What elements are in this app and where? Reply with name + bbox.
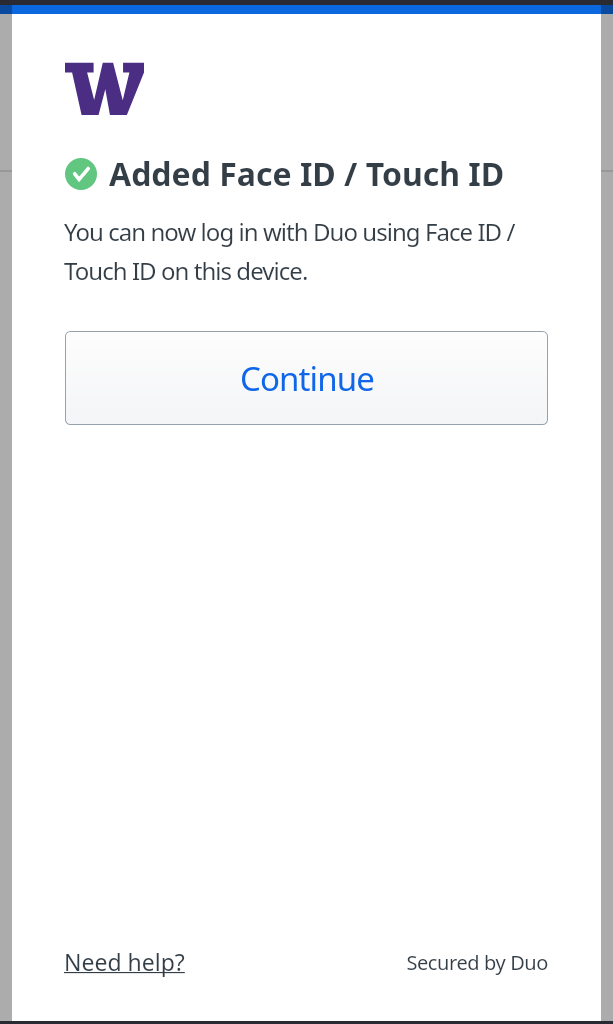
staticText: You can now log in with Duo using Face I… bbox=[64, 215, 526, 287]
staticText: Secured by Duo bbox=[348, 949, 548, 976]
other: University of Washington bbox=[65, 62, 144, 115]
button[interactable]: Continue bbox=[66, 332, 547, 424]
staticText: Added Face ID / Touch ID bbox=[109, 152, 505, 196]
staticText: Continue bbox=[240, 356, 374, 401]
staticText: Need help? bbox=[64, 946, 185, 977]
button[interactable]: Need help? bbox=[64, 946, 185, 978]
